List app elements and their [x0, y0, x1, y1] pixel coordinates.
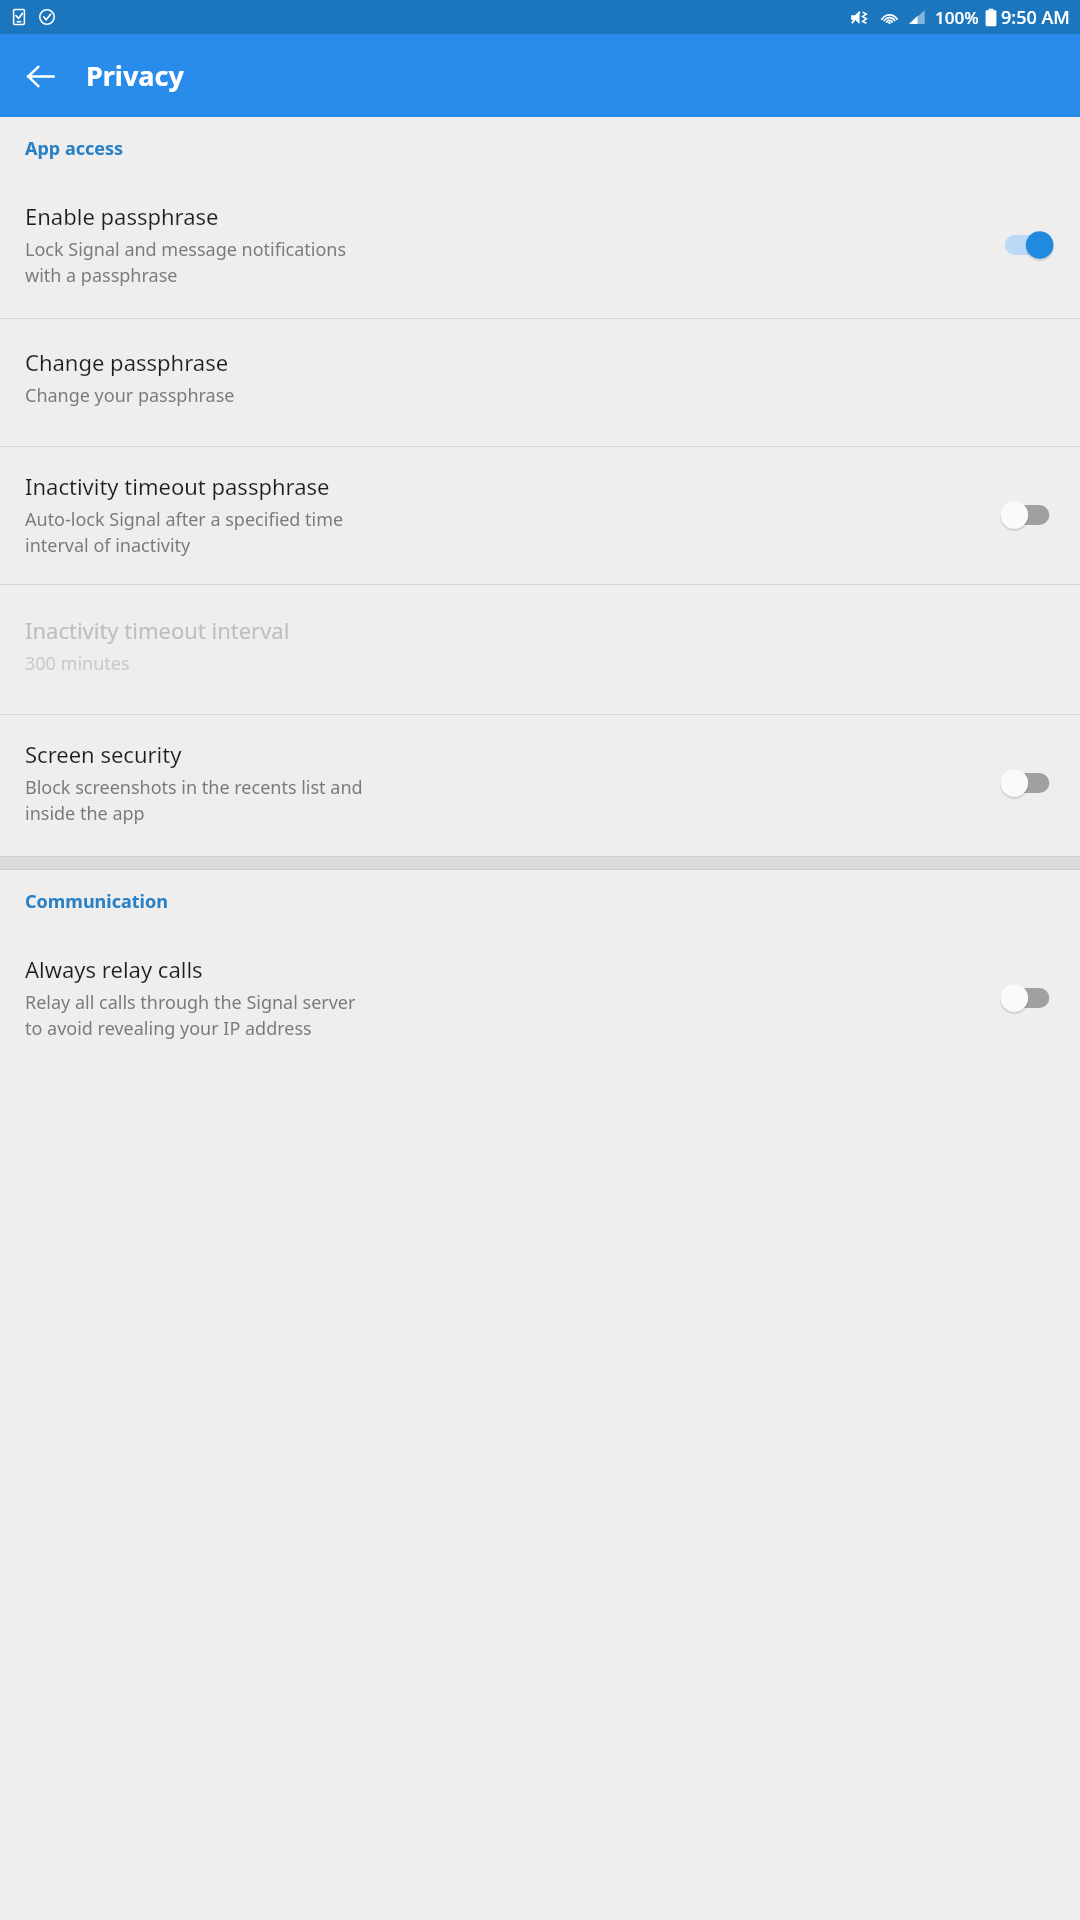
button[interactable]: Toggle off — [996, 763, 1058, 803]
button[interactable]: Toggle off — [996, 978, 1058, 1018]
button[interactable]: Screen security — [0, 715, 1080, 856]
staticText: Block screenshots in the recents list an… — [25, 775, 363, 826]
staticText: Change passphrase — [25, 347, 229, 377]
staticText: 300 minutes — [25, 651, 130, 676]
staticText: Change your passphrase — [25, 383, 235, 408]
button[interactable]: Back — [14, 50, 66, 102]
staticText: 9:50 AM — [1001, 5, 1070, 30]
button[interactable]: Toggle on — [996, 225, 1058, 265]
staticText: Always relay calls — [25, 954, 203, 984]
staticText: Relay all calls through the Signal serve… — [25, 990, 356, 1041]
staticText: Communication — [25, 889, 168, 914]
button[interactable]: Toggle off — [996, 495, 1058, 535]
button[interactable]: Enable passphrase — [0, 179, 1080, 318]
staticText: Inactivity timeout interval — [25, 615, 290, 645]
staticText: App access — [25, 136, 124, 161]
button[interactable]: Inactivity timeout interval — [0, 585, 1080, 714]
staticText: Privacy — [86, 57, 184, 94]
staticText: Enable passphrase — [25, 201, 219, 231]
button[interactable]: Inactivity timeout passphrase — [0, 447, 1080, 584]
staticText: Auto-lock Signal after a specified time … — [25, 507, 344, 558]
button[interactable]: Always relay calls — [0, 932, 1080, 1071]
staticText: 100% — [935, 6, 979, 29]
staticText: Lock Signal and message notifications wi… — [25, 237, 347, 288]
staticText: Inactivity timeout passphrase — [25, 471, 330, 501]
button[interactable]: Change passphrase — [0, 319, 1080, 446]
staticText: Screen security — [25, 739, 182, 769]
